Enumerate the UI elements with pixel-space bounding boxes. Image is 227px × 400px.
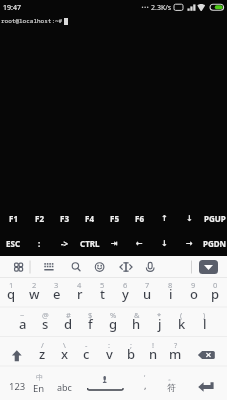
staticText: ‘ [144, 373, 146, 383]
staticText: l [203, 315, 207, 333]
button[interactable]: 5 [91, 280, 114, 306]
button[interactable]: 。 [158, 370, 184, 400]
button[interactable]: & [125, 310, 148, 336]
staticText: q [7, 285, 16, 303]
button[interactable]: \ [53, 340, 76, 366]
button[interactable]: 0 [204, 280, 227, 306]
button[interactable]: ⇥ [102, 231, 127, 256]
button[interactable]: % [102, 310, 125, 336]
staticText: f [88, 315, 93, 333]
button[interactable]: * [148, 310, 171, 336]
button[interactable]: Move cursor [105, 256, 130, 278]
button[interactable]: - [75, 340, 98, 366]
staticText: 19:47 [3, 3, 21, 13]
button[interactable]: -> [52, 231, 77, 256]
button[interactable]: 7 [136, 280, 159, 306]
staticText: g [109, 315, 118, 333]
button[interactable]: PGDN [202, 231, 227, 256]
staticText: o [190, 285, 198, 303]
button[interactable]: 3 [45, 280, 68, 306]
staticText: x [61, 345, 69, 363]
staticText: d [64, 315, 73, 333]
button[interactable]: ↑ [152, 206, 177, 231]
staticText: s [42, 315, 49, 333]
button[interactable]: Voice input [130, 256, 156, 278]
button[interactable]: Hide keyboard [199, 260, 218, 274]
button[interactable]: 6 [114, 280, 137, 306]
button[interactable]: ) [193, 310, 216, 336]
staticText: i [169, 285, 173, 303]
button[interactable]: F3 [52, 206, 77, 231]
button[interactable]: F4 [77, 206, 102, 231]
button[interactable]: 中 [26, 370, 52, 400]
staticText: b [127, 345, 136, 363]
staticText: 2 [32, 280, 37, 290]
button[interactable]: ↓ [152, 231, 177, 256]
staticText: & [134, 310, 140, 320]
button[interactable]: Space [82, 374, 128, 400]
staticText: 9 [191, 280, 196, 290]
staticText: t [100, 285, 105, 303]
staticText: 符 [167, 382, 176, 393]
staticText: 6 [123, 280, 128, 290]
button[interactable]: 2 [23, 280, 46, 306]
button[interactable]: Input method [30, 256, 56, 278]
staticText: F3 [60, 213, 69, 224]
button[interactable]: ! [142, 340, 165, 366]
button[interactable]: ↓ [177, 206, 202, 231]
button[interactable]: @ [34, 310, 57, 336]
staticText: \ [63, 340, 66, 350]
staticText: 1 [9, 280, 14, 290]
button[interactable]: ? [164, 340, 187, 366]
button[interactable]: / [31, 340, 54, 366]
staticText: 4 [77, 280, 82, 290]
button[interactable]: Enter [194, 374, 220, 400]
button[interactable]: 8 [159, 280, 182, 306]
staticText: ! [152, 340, 155, 350]
staticText: h [132, 315, 141, 333]
staticText: 5 [100, 280, 105, 290]
button[interactable]: 9 [182, 280, 205, 306]
button[interactable]: Emoji [81, 256, 105, 278]
button[interactable]: F6 [127, 206, 152, 231]
button[interactable]: F1 [0, 206, 26, 231]
button[interactable]: ; [120, 340, 143, 366]
staticText: $ [88, 310, 93, 320]
staticText: v [106, 345, 113, 363]
button[interactable]: 1 [0, 280, 23, 306]
button[interactable]: $ [79, 310, 102, 336]
button[interactable]: CTRL [77, 231, 102, 256]
button[interactable]: : [98, 340, 121, 366]
staticText: n [149, 345, 158, 363]
button[interactable]: ESC [0, 231, 26, 256]
staticText: @ [42, 310, 49, 320]
button[interactable]: Keyboard layouts [0, 256, 30, 278]
button[interactable]: abc [51, 370, 77, 400]
button[interactable]: ← [127, 231, 152, 256]
button[interactable]: : [26, 231, 52, 256]
button[interactable]: 4 [68, 280, 91, 306]
staticText: F1 [9, 213, 18, 224]
staticText: PGDN [203, 238, 227, 249]
staticText: , [144, 379, 147, 392]
staticText: ~ [20, 310, 25, 320]
button[interactable]: 123 [4, 370, 30, 400]
button[interactable]: Search [56, 256, 81, 278]
button[interactable]: PGUP [202, 206, 227, 231]
staticText: : [108, 340, 111, 350]
staticText: e [53, 285, 61, 303]
button[interactable]: ‘ [132, 370, 158, 400]
staticText: ⇥ [111, 239, 118, 248]
staticText: CTRL [80, 238, 100, 249]
staticText: r [77, 285, 83, 303]
button[interactable]: Shift [5, 344, 29, 368]
button[interactable]: F5 [102, 206, 127, 231]
button[interactable]: Backspace [194, 344, 220, 368]
button[interactable]: ~ [11, 310, 34, 336]
button[interactable]: # [57, 310, 80, 336]
button[interactable]: F2 [26, 206, 52, 231]
staticText: : [38, 238, 41, 249]
button[interactable]: ( [170, 310, 193, 336]
button[interactable]: → [177, 231, 202, 256]
staticText: F4 [85, 213, 94, 224]
